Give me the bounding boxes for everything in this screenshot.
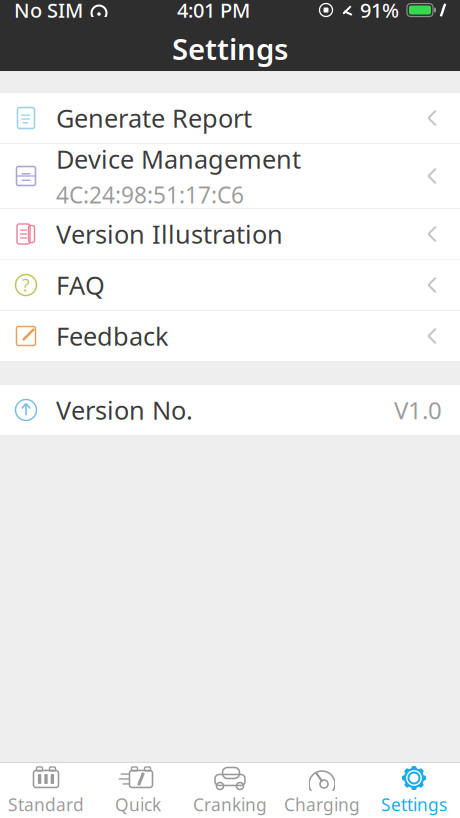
staticText: Cranking bbox=[193, 793, 267, 816]
staticText: Version Illustration bbox=[56, 217, 283, 251]
staticText: 91% bbox=[360, 0, 399, 23]
staticText: 4C:24:98:51:17:C6 bbox=[56, 180, 244, 210]
button[interactable]: Charging bbox=[276, 764, 368, 816]
staticText: Device Management bbox=[56, 142, 301, 176]
button[interactable]: Cranking bbox=[184, 764, 276, 816]
staticText: Settings bbox=[172, 29, 288, 68]
button[interactable]: Standard bbox=[0, 764, 92, 816]
button[interactable]: ? bbox=[0, 260, 460, 310]
staticText: 4:01 PM bbox=[177, 0, 250, 23]
button[interactable]: Quick bbox=[92, 764, 184, 816]
button[interactable]: Version No. bbox=[0, 385, 460, 435]
staticText: Standard bbox=[8, 793, 84, 816]
button[interactable]: Settings bbox=[368, 764, 460, 816]
button[interactable]: Device Management bbox=[0, 144, 460, 208]
button[interactable]: Feedback bbox=[0, 311, 460, 361]
staticText: ? bbox=[22, 273, 30, 296]
staticText: Generate Report bbox=[56, 101, 252, 135]
button[interactable]: Version Illustration bbox=[0, 209, 460, 259]
button[interactable]: Generate Report bbox=[0, 93, 460, 143]
staticText: FAQ bbox=[56, 268, 105, 302]
staticText: Quick bbox=[115, 793, 161, 816]
staticText: Version No. bbox=[56, 393, 193, 427]
staticText: Charging bbox=[284, 793, 360, 816]
staticText: V1.0 bbox=[394, 394, 442, 426]
staticText: No SIM bbox=[14, 0, 83, 23]
staticText: Feedback bbox=[56, 319, 169, 353]
staticText: Settings bbox=[381, 793, 447, 816]
